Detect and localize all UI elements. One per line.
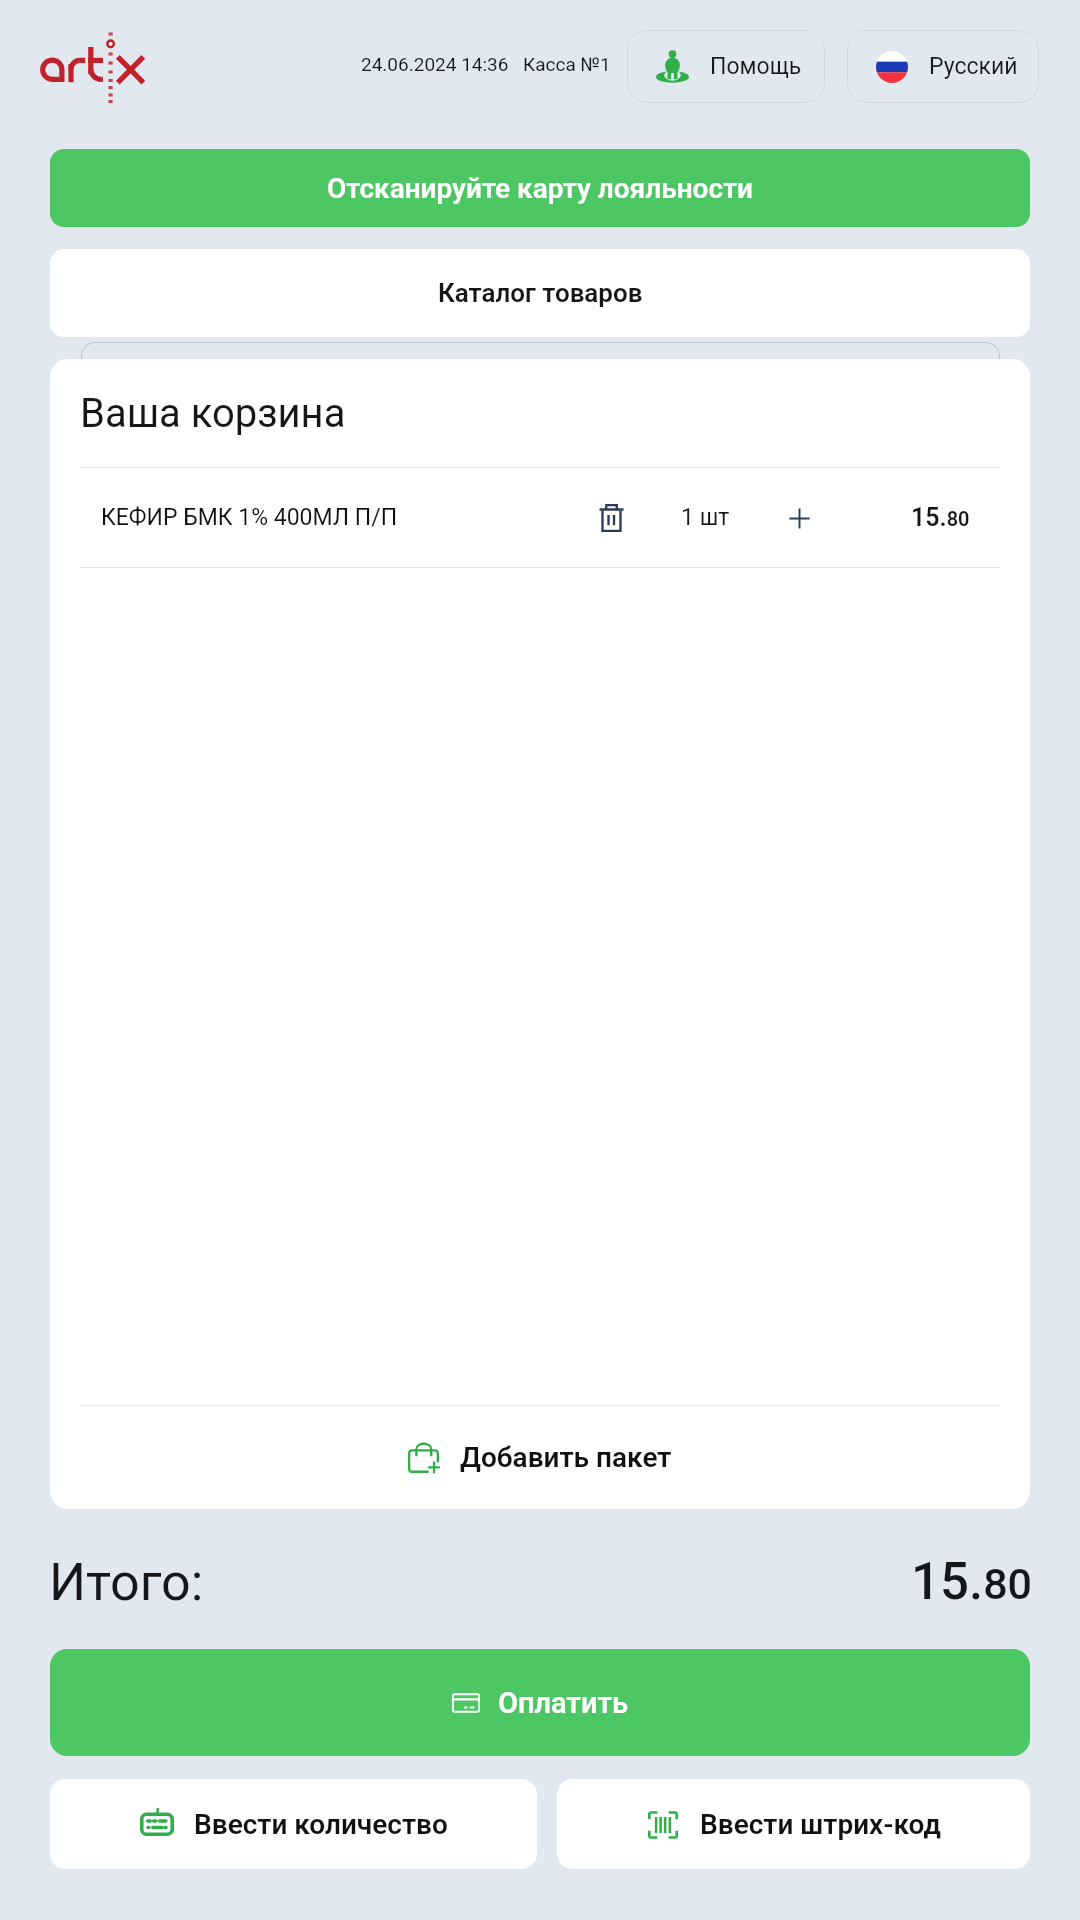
button[interactable]: Удалить xyxy=(578,485,644,551)
staticText: 1 шт xyxy=(681,504,730,531)
staticText: Ваша корзина xyxy=(80,390,346,437)
button[interactable]: Добавить xyxy=(766,485,832,551)
staticText: 15.80 xyxy=(911,1552,1033,1612)
staticText: Русский xyxy=(929,53,1018,80)
staticText: Ввести штрих-код xyxy=(700,1808,941,1841)
staticText: Добавить пакет xyxy=(460,1441,672,1474)
staticText: 24.06.2024 14:36 xyxy=(361,53,509,75)
staticText: Оплатить xyxy=(498,1686,629,1720)
staticText: Касса №1 xyxy=(523,53,611,75)
staticText: Каталог товаров xyxy=(438,278,643,308)
button[interactable]: Русский xyxy=(847,30,1039,103)
button[interactable]: Добавить пакет xyxy=(50,1406,1030,1509)
button[interactable]: Artix Solutions xyxy=(38,30,144,104)
button[interactable]: Ввести количество xyxy=(50,1779,537,1869)
button[interactable]: Каталог товаров xyxy=(50,249,1030,337)
staticText: 15.80 xyxy=(911,503,970,532)
button[interactable]: Помощь xyxy=(627,30,825,103)
staticText: Отсканируйте карту лояльности xyxy=(327,172,754,205)
button[interactable]: Оплатить xyxy=(50,1649,1030,1756)
staticText: Итого: xyxy=(49,1552,204,1613)
button[interactable]: Ввести штрих-код xyxy=(557,1779,1030,1869)
staticText: Помощь xyxy=(710,53,802,80)
button[interactable]: Отсканируйте карту лояльности xyxy=(50,149,1030,227)
staticText: КЕФИР БМК 1% 400МЛ П/П xyxy=(101,504,398,531)
staticText: Ввести количество xyxy=(194,1808,448,1841)
